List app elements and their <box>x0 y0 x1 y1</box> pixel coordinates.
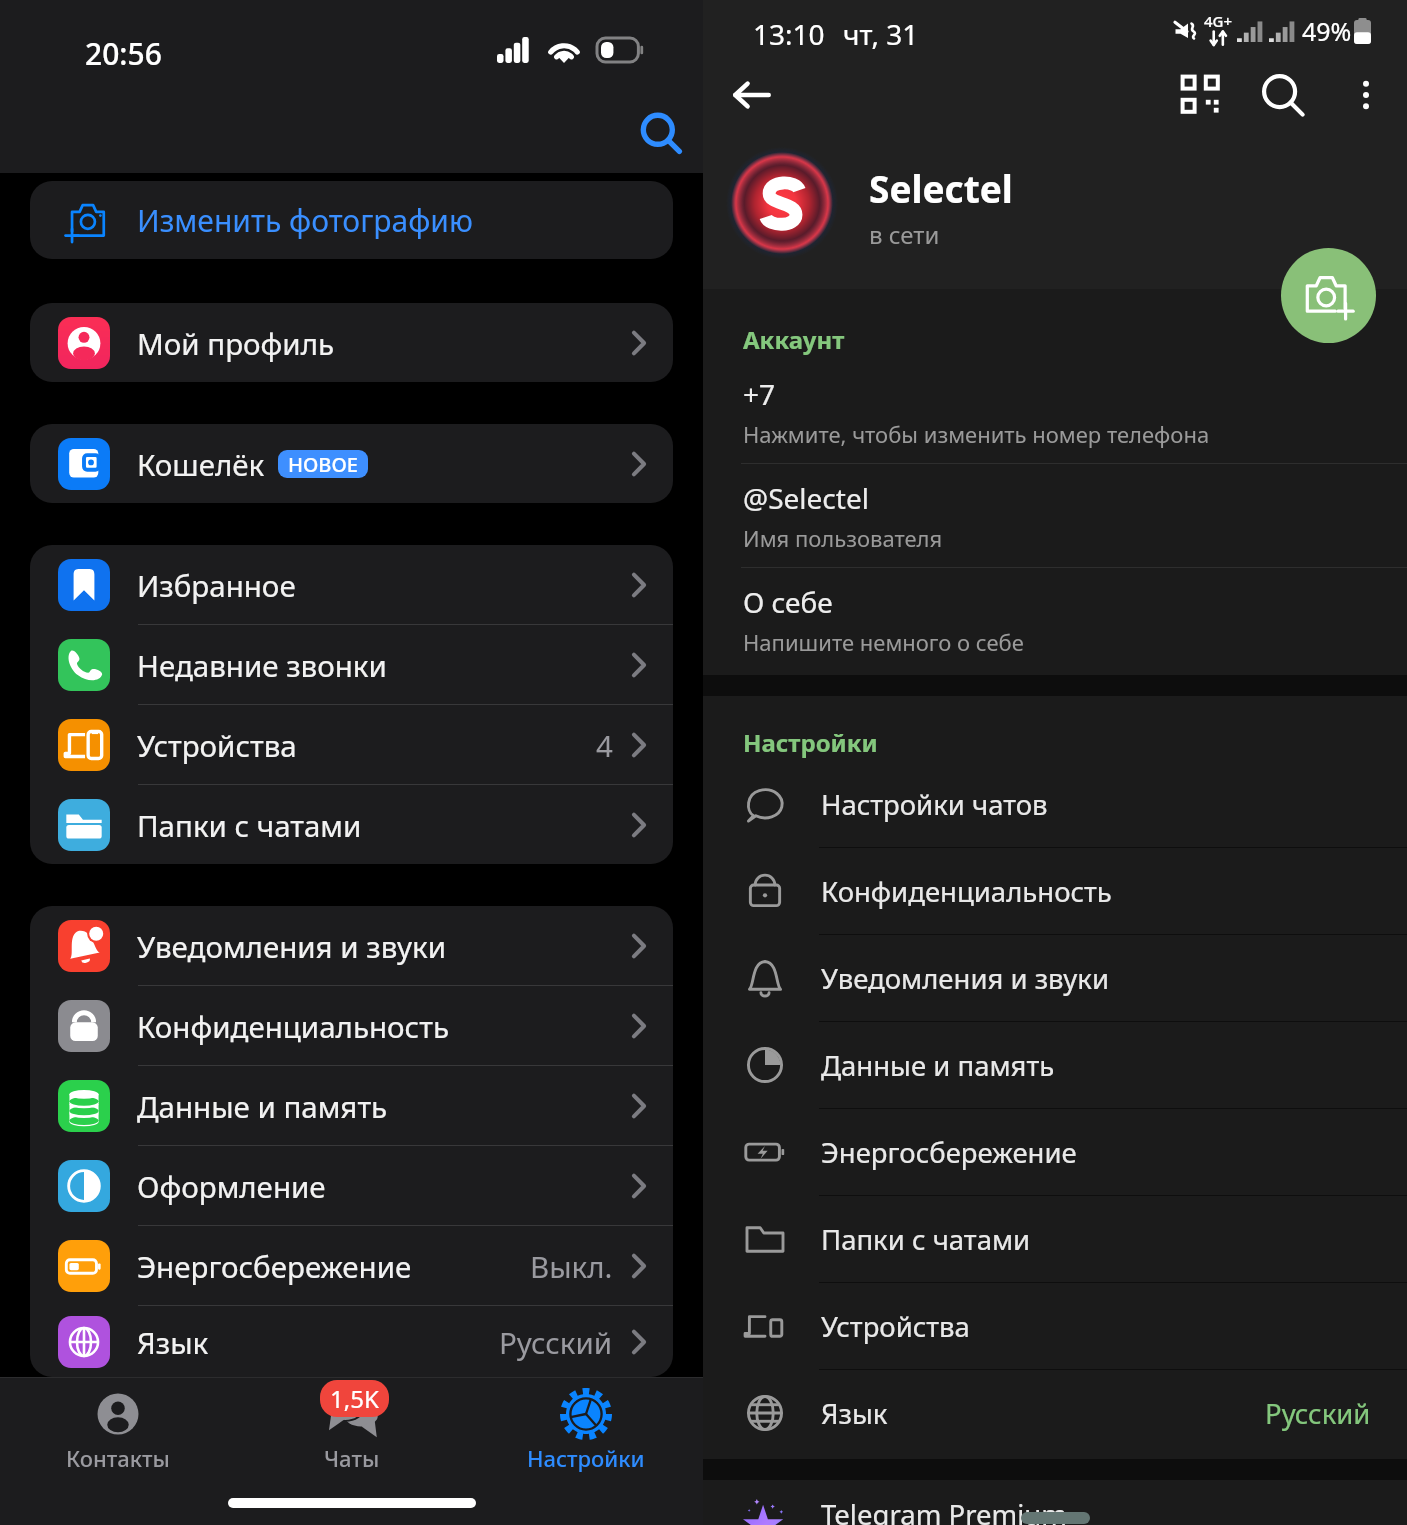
button[interactable]: Оформление <box>30 1146 673 1225</box>
button[interactable]: Энергосбережение <box>30 1226 673 1305</box>
staticText: Имя пользователя <box>743 523 943 553</box>
button[interactable]: Telegram Premium <box>703 1496 1407 1525</box>
button[interactable]: Папки с чатами <box>30 785 673 864</box>
staticText: Мой профиль <box>137 323 335 363</box>
staticText: в сети <box>869 218 940 251</box>
staticText: Язык <box>137 1322 209 1362</box>
button[interactable]: Кошелёк <box>30 424 673 503</box>
staticText: Конфиденциальность <box>137 1006 449 1046</box>
staticText: Русский <box>499 1322 613 1362</box>
staticText: 20:56 <box>85 33 162 74</box>
button[interactable]: Настройки чатов <box>703 761 1407 847</box>
button[interactable]: Данные и память <box>703 1022 1407 1108</box>
button[interactable]: Конфиденциальность <box>30 986 673 1065</box>
button[interactable]: More options <box>1337 66 1395 124</box>
button[interactable]: Контакты <box>0 1377 235 1482</box>
staticText: Нажмите, чтобы изменить номер телефона <box>743 419 1210 449</box>
staticText: Изменить фотографию <box>137 200 473 241</box>
staticText: чт, 31 <box>843 15 919 53</box>
staticText: Папки с чатами <box>821 1221 1031 1258</box>
button[interactable]: Конфиденциальность <box>703 848 1407 934</box>
staticText: Данные и память <box>137 1086 388 1126</box>
staticText: Энергосбережение <box>137 1246 412 1286</box>
button[interactable]: Изменить фотографию <box>30 181 673 259</box>
staticText: Оформление <box>137 1166 326 1206</box>
staticText: Telegram Premium <box>821 1496 1067 1525</box>
staticText: Избранное <box>137 565 296 605</box>
staticText: 13:10 <box>753 15 825 53</box>
button[interactable]: Back <box>723 66 781 124</box>
button[interactable]: О себе <box>703 568 1407 671</box>
staticText: Чаты <box>324 1443 380 1473</box>
staticText: Настройки <box>527 1443 645 1473</box>
button[interactable]: Уведомления и звуки <box>30 906 673 985</box>
button[interactable]: Папки с чатами <box>703 1196 1407 1282</box>
button[interactable]: Язык <box>703 1370 1407 1456</box>
button[interactable]: Энергосбережение <box>703 1109 1407 1195</box>
staticText: 4G+ <box>1204 11 1233 31</box>
staticText: О себе <box>743 583 833 621</box>
staticText: +7 <box>743 375 776 413</box>
staticText: Напишите немного о себе <box>743 627 1024 657</box>
staticText: Язык <box>821 1395 888 1432</box>
staticText: Русский <box>1265 1395 1371 1432</box>
staticText: Selectel <box>869 163 1013 213</box>
button[interactable]: Данные и память <box>30 1066 673 1145</box>
staticText: Аккаунт <box>743 323 845 356</box>
button[interactable]: Change photo <box>1281 248 1376 343</box>
button[interactable]: Настройки <box>469 1377 703 1482</box>
staticText: НОВОЕ <box>288 451 358 478</box>
button[interactable]: Уведомления и звуки <box>703 935 1407 1021</box>
staticText: Настройки <box>743 726 878 759</box>
button[interactable]: @Selectel <box>703 464 1407 567</box>
staticText: Настройки чатов <box>821 786 1048 823</box>
button[interactable]: Устройства <box>703 1283 1407 1369</box>
staticText: Устройства <box>137 725 297 765</box>
button[interactable]: Search <box>634 106 688 160</box>
staticText: 4 <box>596 725 613 765</box>
staticText: Контакты <box>66 1443 170 1473</box>
staticText: Кошелёк <box>137 444 265 484</box>
staticText: Уведомления и звуки <box>821 960 1110 997</box>
button[interactable]: Недавние звонки <box>30 625 673 704</box>
staticText: @Selectel <box>743 479 869 517</box>
staticText: 1,5K <box>330 1382 379 1415</box>
staticText: Данные и память <box>821 1047 1055 1084</box>
button[interactable]: Избранное <box>30 545 673 624</box>
staticText: Уведомления и звуки <box>137 926 446 966</box>
staticText: Устройства <box>821 1308 970 1345</box>
button[interactable]: Мой профиль <box>30 303 673 382</box>
staticText: 49% <box>1302 14 1352 48</box>
button[interactable]: QR code <box>1172 66 1230 124</box>
button[interactable]: Язык <box>30 1306 673 1377</box>
staticText: Выкл. <box>530 1246 613 1286</box>
button[interactable]: Search <box>1254 66 1312 124</box>
staticText: Конфиденциальность <box>821 873 1112 910</box>
staticText: Папки с чатами <box>137 805 362 845</box>
button[interactable]: +7 <box>703 360 1407 463</box>
button[interactable]: 1,5K <box>235 1377 469 1482</box>
staticText: Энергосбережение <box>821 1134 1077 1171</box>
staticText: Недавние звонки <box>137 645 387 685</box>
button[interactable]: Устройства <box>30 705 673 784</box>
